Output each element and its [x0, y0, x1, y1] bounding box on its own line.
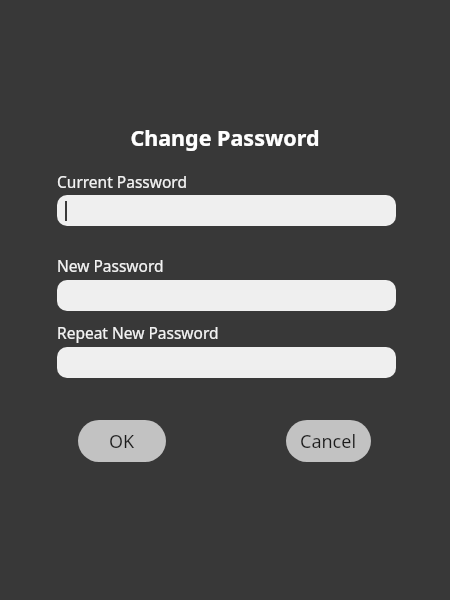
button[interactable]: Repeat New Password field — [57, 347, 396, 378]
staticText: OK — [109, 429, 135, 454]
button[interactable]: Current Password field — [57, 195, 396, 226]
staticText: Current Password — [57, 171, 187, 192]
button[interactable]: OK — [78, 420, 166, 462]
button[interactable]: New Password field — [57, 280, 396, 311]
staticText: Change Password — [0, 123, 450, 152]
button[interactable]: Cancel — [286, 420, 371, 462]
staticText: Cancel — [300, 429, 357, 454]
staticText: New Password — [57, 255, 164, 276]
staticText: Repeat New Password — [57, 322, 219, 343]
